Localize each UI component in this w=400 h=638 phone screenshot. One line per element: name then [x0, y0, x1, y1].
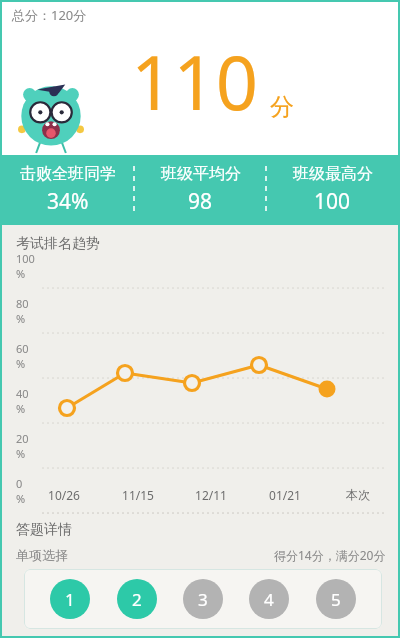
staticText: 分 — [270, 92, 294, 122]
staticText: 5 — [331, 588, 341, 611]
staticText: 单项选择 — [16, 547, 68, 563]
staticText: 2 — [132, 588, 142, 611]
staticText: % — [16, 446, 26, 461]
button[interactable]: 2 — [117, 579, 157, 619]
button[interactable]: 班级平均分 — [135, 155, 266, 225]
staticText: 击败全班同学 — [20, 164, 116, 184]
button[interactable]: 5 — [316, 579, 356, 619]
button[interactable]: 1 — [50, 579, 90, 619]
staticText: 34% — [47, 187, 89, 216]
staticText: % — [16, 401, 26, 416]
button[interactable]: 3 — [183, 579, 223, 619]
staticText: 40 — [16, 386, 29, 401]
staticText: 1 — [65, 588, 75, 611]
staticText: 班级平均分 — [161, 164, 241, 184]
staticText: 12/11 — [185, 487, 237, 503]
staticText: 班级最高分 — [293, 164, 373, 184]
staticText: 4 — [264, 588, 274, 611]
staticText: % — [16, 356, 26, 371]
button[interactable]: 班级最高分 — [267, 155, 398, 225]
staticText: 答题详情 — [16, 521, 72, 539]
staticText: 总分：120分 — [12, 6, 87, 24]
button[interactable]: 击败全班同学 — [2, 155, 134, 225]
staticText: 100 — [16, 251, 35, 266]
staticText: 0 — [16, 476, 23, 491]
staticText: % — [16, 311, 26, 326]
staticText: 01/21 — [259, 487, 311, 503]
staticText: 本次 — [332, 487, 384, 502]
staticText: 80 — [16, 296, 29, 311]
staticText: % — [16, 266, 26, 281]
staticText: 98 — [188, 187, 213, 216]
staticText: 20 — [16, 431, 29, 446]
staticText: % — [16, 491, 26, 506]
staticText: 得分14分，满分20分 — [274, 547, 386, 563]
staticText: 110 — [131, 31, 258, 132]
staticText: 11/15 — [112, 487, 164, 503]
staticText: 10/26 — [38, 487, 90, 503]
staticText: 3 — [198, 588, 208, 611]
staticText: 100 — [314, 187, 351, 216]
staticText: 60 — [16, 341, 29, 356]
staticText: 考试排名趋势 — [16, 235, 100, 253]
button[interactable]: 4 — [249, 579, 289, 619]
